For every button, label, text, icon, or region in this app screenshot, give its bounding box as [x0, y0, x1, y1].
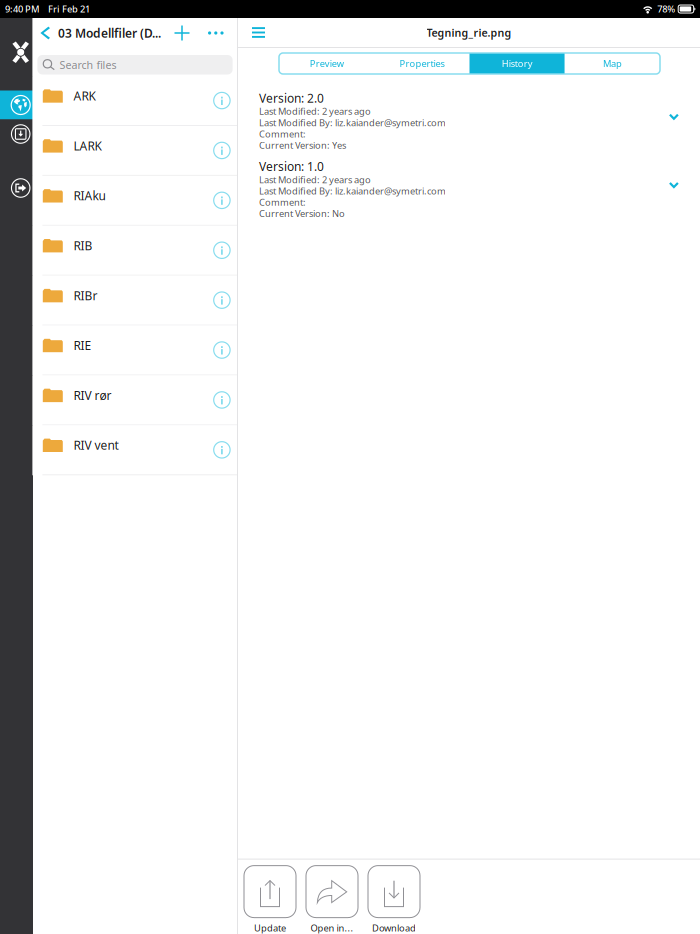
staticText: LARK	[73, 138, 101, 154]
button[interactable]: Preview	[279, 53, 374, 74]
staticText: Version: 1.0	[259, 158, 324, 174]
staticText: Update	[254, 922, 286, 934]
staticText: Fri Feb 21	[48, 3, 90, 15]
staticText: Comment:	[259, 196, 306, 208]
button[interactable]: Add	[169, 20, 195, 46]
staticText: Version: 2.0	[259, 90, 324, 106]
staticText: Download	[372, 922, 416, 934]
staticText: Map	[603, 57, 622, 70]
button[interactable]: Back	[38, 22, 52, 44]
staticText: Search files	[59, 58, 116, 72]
button[interactable]: RIV vent	[32, 425, 238, 475]
button[interactable]: Browse	[0, 90, 33, 119]
button[interactable]: Menu	[246, 21, 271, 44]
staticText: RIV vent	[73, 437, 118, 453]
staticText: Last Modified: 2 years ago	[259, 105, 371, 117]
staticText: RIB	[73, 238, 92, 253]
staticText: Last Modified By: liz.kaiander@symetri.c…	[259, 116, 446, 129]
button[interactable]: RIBr	[32, 276, 238, 326]
button[interactable]: Expand version 2.0	[657, 103, 691, 130]
button[interactable]: Sign out	[0, 173, 33, 202]
button[interactable]: Properties	[374, 53, 469, 74]
staticText: RIV rør	[73, 387, 111, 403]
button[interactable]: Open in...	[306, 866, 358, 934]
staticText: ARK	[73, 88, 95, 104]
staticText: Tegning_rie.png	[426, 25, 511, 40]
button[interactable]: More options	[203, 20, 229, 46]
staticText: 03 Modellfiler (D...	[58, 25, 161, 41]
staticText: RIAku	[73, 188, 105, 204]
staticText: Comment:	[259, 128, 306, 140]
staticText: Preview	[310, 57, 344, 70]
staticText: RIE	[73, 337, 91, 353]
button[interactable]: History	[469, 53, 565, 74]
button[interactable]: Download	[368, 866, 420, 934]
button[interactable]: RIV rør	[32, 375, 238, 425]
button[interactable]: Uploads	[0, 119, 33, 148]
button[interactable]: LARK	[32, 126, 238, 176]
button[interactable]: Update	[244, 866, 296, 934]
button[interactable]: RIB	[32, 226, 238, 276]
staticText: 9:40 PM	[5, 3, 40, 15]
staticText: History	[502, 57, 533, 70]
button[interactable]: Map	[565, 53, 660, 74]
staticText: Last Modified By: liz.kaiander@symetri.c…	[259, 185, 446, 197]
staticText: RIBr	[73, 287, 97, 303]
staticText: 78%	[657, 3, 675, 15]
staticText: Current Version: No	[259, 207, 345, 220]
staticText: Open in...	[310, 922, 353, 934]
button[interactable]: Expand version 1.0	[657, 172, 691, 199]
button[interactable]: ARK	[32, 76, 238, 126]
staticText: Current Version: Yes	[259, 139, 346, 151]
staticText: Last Modified: 2 years ago	[259, 173, 371, 186]
staticText: Properties	[399, 57, 444, 70]
button[interactable]: RIE	[32, 326, 238, 375]
button[interactable]: RIAku	[32, 176, 238, 226]
